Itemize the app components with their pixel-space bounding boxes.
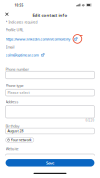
staticText: Profile URL <box>6 27 24 32</box>
staticText: Website <box>6 146 19 151</box>
staticText: * Indicates required <box>6 20 38 24</box>
staticText: 0/220 <box>85 118 94 122</box>
staticText: colm@optimcar.com <box>6 52 39 57</box>
staticText: August 28 <box>7 129 23 133</box>
staticText: Phone number <box>6 67 30 72</box>
staticText: Save <box>46 160 54 166</box>
staticText: Address <box>6 99 19 104</box>
staticText: Email <box>6 44 15 50</box>
staticText: Birthday <box>6 123 20 129</box>
staticText: https://www.linkedin.com/in/colmoreilly <box>6 37 71 42</box>
staticText: Phone type <box>6 83 24 88</box>
button[interactable]: Close <box>2 10 11 19</box>
button[interactable]: Save <box>6 159 94 167</box>
staticText: 10:55 <box>15 3 24 7</box>
staticText: Please select <box>7 90 29 95</box>
staticText: Your network <box>11 138 32 142</box>
staticText: Edit contact info <box>32 12 67 18</box>
